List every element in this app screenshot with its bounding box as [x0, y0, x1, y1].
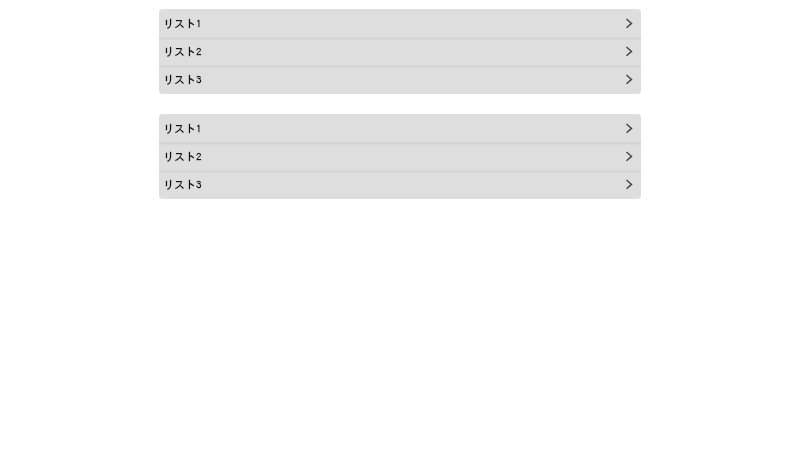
- other: Open リスト2: [623, 150, 635, 162]
- staticText: リスト3: [163, 179, 202, 190]
- other: Open リスト3: [623, 178, 635, 190]
- button[interactable]: リスト3: [159, 65, 641, 93]
- other: Open リスト1: [623, 122, 635, 134]
- button[interactable]: リスト2: [159, 37, 641, 65]
- staticText: リスト3: [163, 74, 202, 85]
- button[interactable]: リスト1: [159, 9, 641, 37]
- other: Open リスト3: [623, 73, 635, 85]
- staticText: リスト1: [163, 123, 202, 134]
- button[interactable]: リスト3: [159, 170, 641, 198]
- other: Open リスト2: [623, 45, 635, 57]
- staticText: リスト2: [163, 46, 202, 57]
- other: Open リスト1: [623, 17, 635, 29]
- staticText: リスト2: [163, 151, 202, 162]
- button[interactable]: リスト2: [159, 142, 641, 170]
- staticText: リスト1: [163, 18, 202, 29]
- button[interactable]: リスト1: [159, 114, 641, 142]
